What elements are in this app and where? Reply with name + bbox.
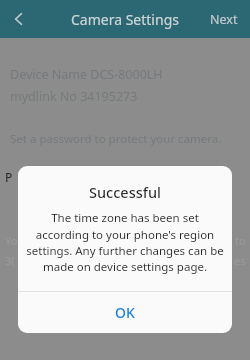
button[interactable]: Back xyxy=(0,0,38,38)
staticText: Successful xyxy=(18,182,232,202)
button[interactable]: OK xyxy=(18,292,232,333)
staticText: Next xyxy=(210,11,238,28)
staticText: 3( xyxy=(5,253,15,268)
staticText: Set a password to protect your camera. xyxy=(10,131,222,147)
staticText: Camera Settings xyxy=(71,10,179,29)
button[interactable]: Next xyxy=(198,2,250,37)
staticText: The time zone has been set according to … xyxy=(25,210,225,274)
staticText: Yo xyxy=(5,233,18,248)
staticText: P xyxy=(5,169,13,185)
staticText: to xyxy=(235,233,246,248)
staticText: OK xyxy=(115,303,135,322)
staticText: mydlink No 34195273 xyxy=(10,88,138,105)
staticText: es xyxy=(234,253,246,268)
staticText: Device Name DCS-8000LH xyxy=(10,66,163,83)
